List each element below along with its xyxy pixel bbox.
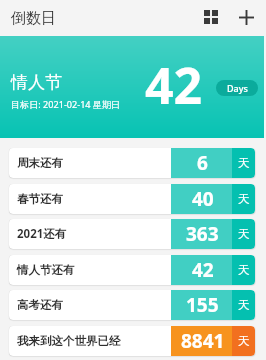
staticText: 情人节还有 <box>17 263 75 277</box>
staticText: 8841 <box>181 328 225 354</box>
staticText: 2021还有 <box>17 226 67 242</box>
staticText: 天 <box>238 298 250 313</box>
staticText: 天 <box>238 227 250 242</box>
button[interactable]: Grid view <box>196 2 226 32</box>
button[interactable]: 高考还有 <box>9 290 255 320</box>
staticText: Days <box>227 82 248 94</box>
staticText: 高考还有 <box>17 298 63 312</box>
staticText: 155 <box>186 292 219 318</box>
staticText: 周末还有 <box>17 156 63 170</box>
button[interactable]: 春节还有 <box>9 184 255 214</box>
button[interactable]: 2021还有 <box>9 219 255 249</box>
staticText: 6 <box>197 150 208 176</box>
staticText: 倒数日 <box>11 9 56 28</box>
staticText: 42 <box>192 257 214 283</box>
staticText: 天 <box>238 334 250 349</box>
staticText: 363 <box>186 221 219 247</box>
button[interactable]: 情人节还有 <box>9 255 255 285</box>
button[interactable]: 情人节 <box>0 36 264 138</box>
button[interactable]: Add <box>231 2 261 32</box>
staticText: 40 <box>192 186 214 212</box>
staticText: 情人节 <box>11 72 62 93</box>
staticText: 春节还有 <box>17 192 63 206</box>
staticText: 目标日: 2021-02-14 星期日 <box>11 98 121 110</box>
button[interactable]: 周末还有 <box>9 148 255 178</box>
staticText: 42 <box>145 51 203 119</box>
staticText: 天 <box>238 156 250 171</box>
staticText: 天 <box>238 263 250 278</box>
staticText: 天 <box>238 192 250 207</box>
button[interactable]: 我来到这个世界已经 <box>9 326 255 356</box>
staticText: 我来到这个世界已经 <box>17 334 121 348</box>
